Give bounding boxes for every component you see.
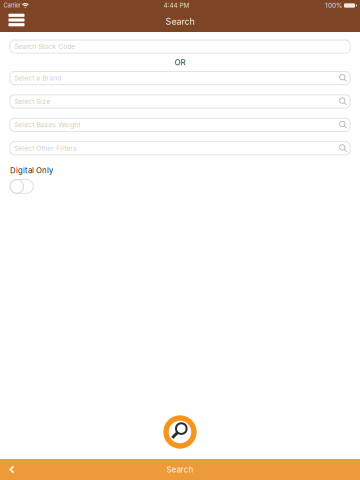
staticText: OR (174, 57, 185, 67)
staticText: Digital Only (10, 166, 53, 175)
staticText: 4:44 PM (163, 2, 189, 9)
button[interactable]: Search (0, 459, 360, 480)
button[interactable]: Digital Only (10, 179, 33, 193)
button[interactable]: Select Other Filters (10, 142, 350, 155)
staticText: Search (165, 16, 194, 27)
button[interactable]: Menu (4, 12, 28, 31)
staticText: Select Other Filters (14, 144, 77, 152)
button[interactable]: Select Bases Weight (10, 118, 350, 131)
button[interactable]: Search (163, 415, 197, 449)
staticText: Select a Brand (14, 74, 61, 82)
staticText: Search Stock Code (14, 43, 75, 51)
button[interactable]: Search Stock Code (10, 40, 350, 53)
staticText: Select Bases Weight (14, 121, 80, 129)
staticText: Select Size (14, 97, 50, 105)
button[interactable]: Select a Brand (10, 71, 350, 85)
staticText: Search (166, 465, 193, 474)
button[interactable]: Select Size (10, 95, 350, 108)
staticText: 100% (325, 2, 342, 9)
staticText: Carrier (3, 2, 20, 9)
